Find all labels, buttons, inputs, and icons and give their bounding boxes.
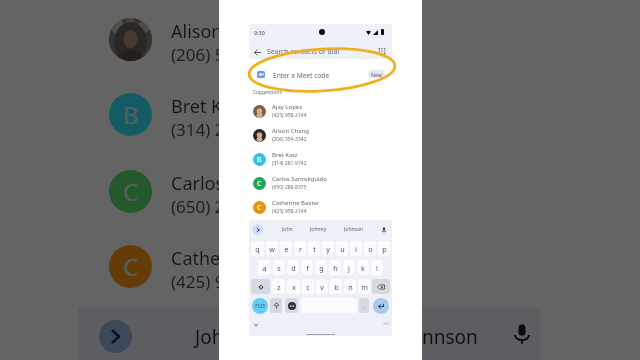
- staticText: Ajay Lopez: [272, 103, 302, 111]
- button[interactable]: s: [273, 260, 285, 275]
- staticText: n: [348, 282, 353, 292]
- button[interactable]: w: [266, 241, 278, 256]
- staticText: Enter a Meet code: [273, 71, 330, 80]
- button[interactable]: p: [378, 241, 390, 256]
- staticText: Carlos: [171, 171, 225, 196]
- staticText: p: [382, 244, 387, 254]
- staticText: Carlos Santoliquido: [272, 175, 327, 183]
- button[interactable]: r: [294, 241, 306, 256]
- staticText: Catherine Baxter: [272, 199, 320, 207]
- staticText: (314) 2: [171, 118, 225, 141]
- button[interactable]: Emoji: [270, 298, 282, 313]
- button[interactable]: i: [350, 241, 362, 256]
- staticText: g: [319, 263, 324, 273]
- staticText: Alison Chang: [272, 127, 309, 135]
- staticText: C: [257, 203, 262, 213]
- staticText: nnson: [422, 324, 478, 350]
- button[interactable]: New: [368, 70, 385, 78]
- staticText: (206) 554-3342: [272, 136, 307, 143]
- staticText: b: [334, 282, 339, 292]
- button[interactable]: y: [322, 241, 334, 256]
- staticText: d: [291, 263, 296, 273]
- button[interactable]: f: [301, 260, 313, 275]
- button[interactable]: g: [315, 260, 327, 275]
- staticText: Alison: [171, 19, 223, 44]
- staticText: (425) 958-2144: [272, 208, 307, 215]
- staticText: o: [368, 244, 373, 254]
- button[interactable]: B: [253, 147, 388, 171]
- button[interactable]: b: [330, 279, 342, 294]
- staticText: C: [123, 175, 139, 208]
- button[interactable]: Expand suggestions: [252, 224, 263, 235]
- staticText: Bret Katz: [272, 151, 298, 159]
- button[interactable]: d: [287, 260, 299, 275]
- button[interactable]: q: [251, 241, 264, 256]
- staticText: Search contacts or dial: [267, 47, 340, 56]
- button[interactable]: Ajay Lopez: [253, 99, 388, 123]
- button[interactable]: Enter: [373, 298, 389, 314]
- staticText: e: [284, 244, 289, 254]
- button[interactable]: Johnson: [344, 226, 364, 233]
- button[interactable]: Back: [250, 45, 264, 59]
- staticText: B: [123, 98, 139, 131]
- staticText: f: [306, 263, 309, 273]
- staticText: r: [299, 244, 302, 254]
- button[interactable]: x: [287, 279, 300, 294]
- button[interactable]: .: [359, 298, 369, 313]
- staticText: B: [257, 155, 262, 165]
- staticText: (206) 5: [171, 43, 225, 66]
- button[interactable]: Keyboard settings: [381, 319, 390, 328]
- staticText: Suggestions: [253, 89, 282, 96]
- button[interactable]: l: [371, 260, 383, 275]
- button[interactable]: h: [329, 260, 341, 275]
- staticText: x: [292, 282, 296, 292]
- staticText: t: [313, 244, 316, 254]
- button[interactable]: k: [357, 260, 369, 275]
- button[interactable]: v: [316, 279, 328, 294]
- button[interactable]: c: [302, 279, 314, 294]
- button[interactable]: Symbols: [252, 298, 268, 314]
- button[interactable]: Enter a Meet code: [249, 64, 392, 84]
- staticText: q: [255, 244, 260, 254]
- button[interactable]: j: [343, 260, 355, 275]
- button[interactable]: C: [253, 195, 388, 219]
- staticText: New: [371, 71, 382, 78]
- staticText: (650) 2: [171, 195, 225, 218]
- staticText: Cathe: [171, 246, 221, 271]
- staticText: c: [306, 282, 310, 292]
- staticText: j: [348, 263, 350, 273]
- button[interactable]: Johnny: [310, 226, 327, 233]
- staticText: y: [326, 244, 330, 254]
- staticText: a: [262, 263, 267, 273]
- staticText: l: [376, 263, 378, 273]
- button[interactable]: Switch language: [285, 298, 298, 313]
- button[interactable]: e: [280, 241, 292, 256]
- button[interactable]: u: [336, 241, 348, 256]
- staticText: 9:30: [254, 29, 265, 36]
- button[interactable]: Alison Chang: [253, 123, 388, 147]
- button[interactable]: z: [272, 279, 285, 294]
- staticText: h: [333, 263, 338, 273]
- staticText: .: [363, 302, 365, 310]
- button[interactable]: Shift: [251, 279, 270, 294]
- button[interactable]: Backspace: [372, 279, 390, 294]
- staticText: C: [123, 250, 139, 283]
- staticText: (425) 9: [171, 270, 225, 293]
- button[interactable]: a: [258, 260, 271, 275]
- button[interactable]: Voice input: [378, 224, 389, 235]
- staticText: u: [340, 244, 345, 254]
- staticText: (425) 958-2144: [272, 112, 307, 119]
- button[interactable]: t: [308, 241, 320, 256]
- button[interactable]: m: [358, 279, 370, 294]
- button[interactable]: n: [344, 279, 356, 294]
- staticText: i: [355, 244, 357, 254]
- button[interactable]: Hide keyboard: [251, 320, 261, 330]
- button[interactable]: John: [282, 226, 293, 233]
- staticText: s: [277, 263, 281, 273]
- button[interactable]: o: [364, 241, 376, 256]
- staticText: (314) 281-9742: [272, 160, 307, 167]
- button[interactable]: Dialpad: [375, 45, 389, 59]
- staticText: Joh: [195, 324, 224, 350]
- button[interactable]: C: [253, 171, 388, 195]
